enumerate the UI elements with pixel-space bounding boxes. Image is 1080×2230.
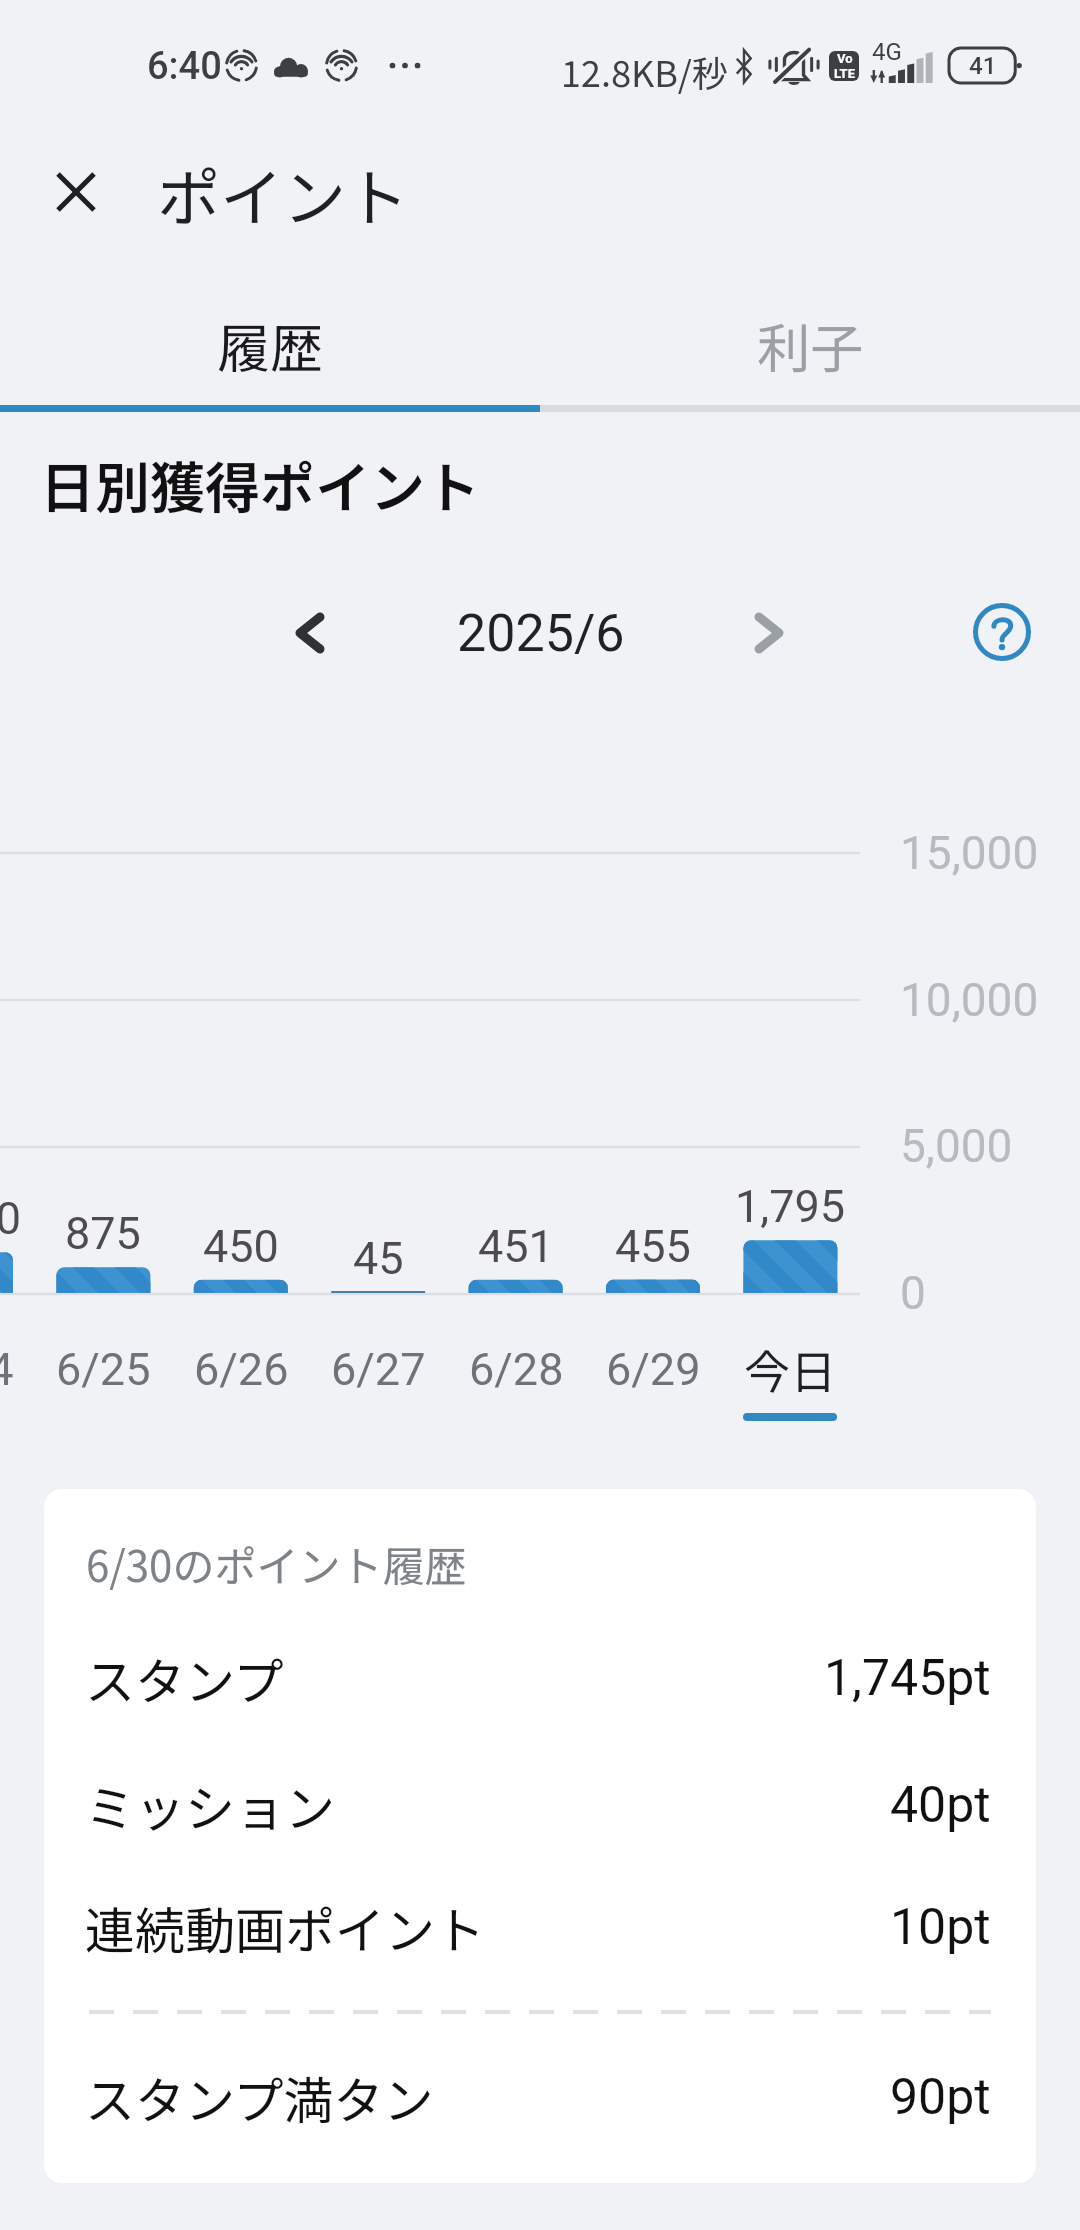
button[interactable]: 6/24 (0, 1320, 34, 1430)
button[interactable]: Previous month (268, 591, 352, 675)
staticText: 451 (478, 1220, 554, 1273)
button[interactable]: 履歴 (0, 285, 540, 405)
staticText: 455 (615, 1220, 691, 1273)
staticText: ミッション (85, 1769, 335, 1841)
staticText: 90pt (890, 2068, 991, 2127)
staticText: 6/25 (56, 1343, 151, 1396)
button[interactable]: Help (962, 592, 1042, 672)
staticText: 6/26 (194, 1343, 289, 1396)
button[interactable]: 今日 (722, 1320, 858, 1430)
staticText: 6/27 (331, 1343, 426, 1396)
staticText: 1,745pt (824, 1649, 991, 1708)
staticText: 875 (65, 1207, 141, 1260)
staticText: 10pt (890, 1898, 991, 1957)
button[interactable]: スタンプ満タン (85, 2041, 991, 2153)
staticText: 2025/6 (457, 603, 625, 664)
staticText: 日別獲得ポイント (40, 444, 481, 524)
staticText: 10,000 (900, 973, 1039, 1027)
staticText: スタンプ満タン (85, 2061, 434, 2133)
staticText: 15,000 (900, 826, 1039, 880)
staticText: Vo (837, 51, 853, 66)
staticText: 4G (872, 38, 902, 66)
staticText: 6:40 (147, 44, 222, 89)
staticText: 6/30のポイント履歴 (86, 1533, 467, 1594)
staticText: 41 (969, 52, 997, 80)
staticText: 1,795 (735, 1180, 846, 1233)
staticText: 1,390 (0, 1192, 22, 1245)
staticText: ポイント (157, 148, 409, 239)
staticText: 連続動画ポイント (85, 1891, 485, 1963)
staticText: 40pt (890, 1776, 991, 1835)
staticText: 45 (353, 1232, 404, 1285)
button[interactable]: Close (26, 142, 126, 242)
staticText: 6/29 (606, 1343, 701, 1396)
staticText: 履歴 (217, 307, 323, 384)
staticText: スタンプ (85, 1642, 284, 1714)
button[interactable]: 6/25 (35, 1320, 171, 1430)
staticText: LTE (834, 66, 855, 81)
staticText: 6/28 (469, 1343, 564, 1396)
button[interactable]: 6/27 (310, 1320, 446, 1430)
staticText: 0 (900, 1266, 926, 1320)
button[interactable]: 6/28 (448, 1320, 584, 1430)
button[interactable]: Next month (727, 591, 811, 675)
button[interactable]: 連続動画ポイント (85, 1871, 991, 1983)
button[interactable]: スタンプ (85, 1622, 991, 1734)
staticText: 12.8KB/秒 (561, 45, 728, 97)
staticText: 5,000 (900, 1119, 1013, 1173)
staticText: 450 (203, 1220, 279, 1273)
staticText: 今日 (744, 1336, 836, 1403)
button[interactable]: 6/26 (173, 1320, 309, 1430)
button[interactable]: 利子 (540, 285, 1080, 405)
staticText: 利子 (757, 307, 863, 384)
staticText: 6/24 (0, 1343, 14, 1396)
button[interactable]: 6/29 (585, 1320, 721, 1430)
button[interactable]: ミッション (85, 1749, 991, 1861)
